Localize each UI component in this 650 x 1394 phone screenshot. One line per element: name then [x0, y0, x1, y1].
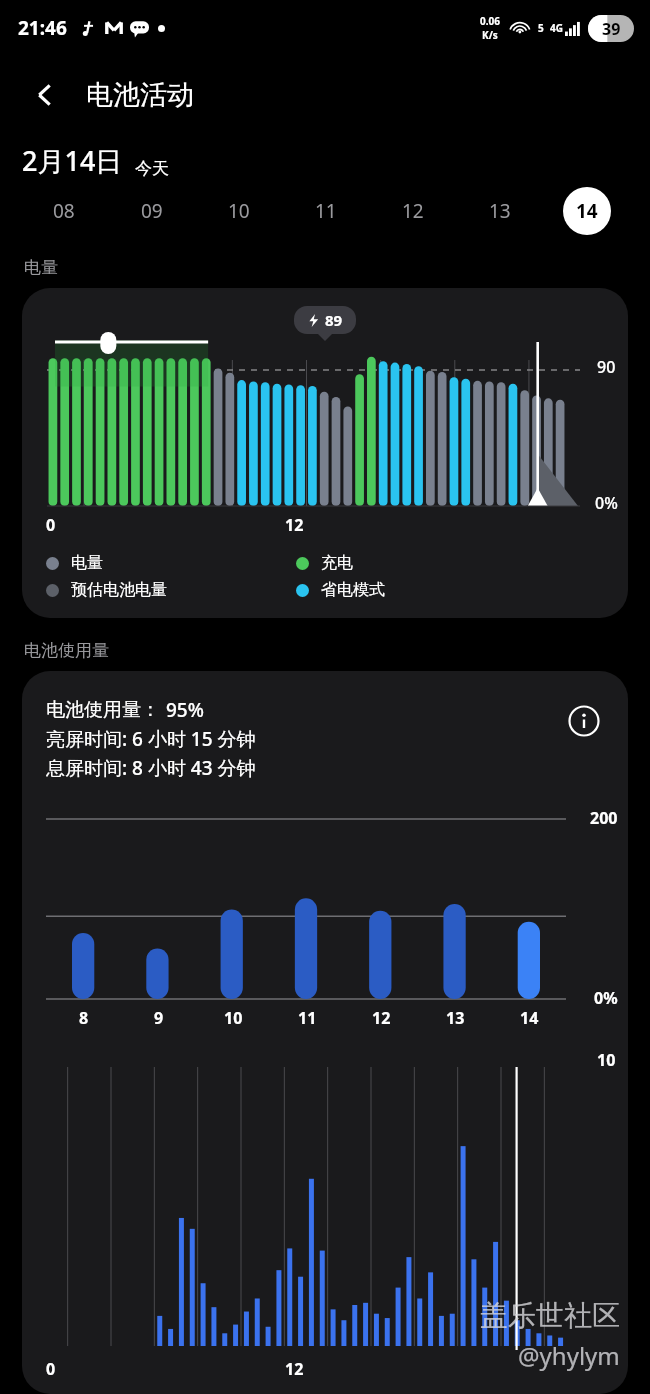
button[interactable]: Back — [18, 68, 72, 122]
staticText: 8 — [79, 1007, 89, 1029]
staticText: 10 — [228, 198, 250, 224]
button[interactable]: 08 — [20, 179, 108, 243]
staticText: 14 — [576, 198, 598, 224]
staticText: 12 — [285, 1358, 304, 1380]
staticText: 21:46 — [18, 15, 67, 41]
staticText: 电池活动 — [86, 78, 194, 112]
staticText: 12 — [402, 198, 424, 224]
staticText: 0% — [595, 492, 618, 514]
button[interactable]: 12 — [369, 179, 456, 243]
staticText: 39 — [602, 18, 621, 40]
staticText: 今天 — [135, 158, 169, 179]
button[interactable]: 11 — [282, 179, 369, 243]
button[interactable]: Info — [562, 699, 606, 743]
staticText: 0.06 — [480, 14, 500, 28]
staticText: 90 — [597, 356, 616, 378]
staticText: 电量 — [71, 553, 103, 573]
staticText: K/s — [482, 28, 498, 42]
staticText: 预估电池电量 — [71, 580, 167, 600]
staticText: 10 — [597, 1049, 616, 1071]
staticText: 10 — [224, 1007, 243, 1029]
button[interactable]: 10 — [195, 179, 282, 243]
staticText: 盖乐世社区 — [480, 1298, 620, 1333]
button[interactable]: 09 — [108, 179, 195, 243]
staticText: 0% — [594, 987, 618, 1009]
staticText: 09 — [141, 198, 163, 224]
button[interactable]: 13 — [456, 179, 543, 243]
staticText: 电池使用量： — [46, 698, 160, 722]
staticText: 08 — [53, 198, 75, 224]
staticText: 12 — [372, 1007, 391, 1029]
staticText: 13 — [489, 198, 511, 224]
staticText: 电量 — [24, 257, 58, 278]
staticText: 9 — [154, 1007, 164, 1029]
staticText: 0 — [46, 1358, 56, 1380]
button[interactable]: 89 — [22, 288, 628, 618]
staticText: 95% — [166, 697, 204, 723]
staticText: 充电 — [321, 553, 353, 573]
staticText: 200 — [590, 807, 618, 829]
staticText: 息屏时间: 8 小时 43 分钟 — [46, 755, 256, 781]
staticText: 12 — [285, 514, 304, 536]
button[interactable]: 14 — [543, 179, 630, 243]
staticText: 4G — [550, 21, 563, 35]
staticText: 14 — [520, 1007, 539, 1029]
staticText: 89 — [325, 310, 343, 330]
staticText: 5 — [538, 21, 544, 35]
staticText: 11 — [315, 198, 337, 224]
staticText: 电池使用量 — [24, 640, 109, 661]
staticText: 13 — [446, 1007, 465, 1029]
staticText: 亮屏时间: 6 小时 15 分钟 — [46, 726, 256, 752]
staticText: @yhylym — [518, 1339, 620, 1372]
staticText: 2月14日 — [22, 142, 123, 179]
staticText: 0 — [46, 514, 56, 536]
staticText: 省电模式 — [321, 580, 385, 600]
staticText: 11 — [298, 1007, 317, 1029]
